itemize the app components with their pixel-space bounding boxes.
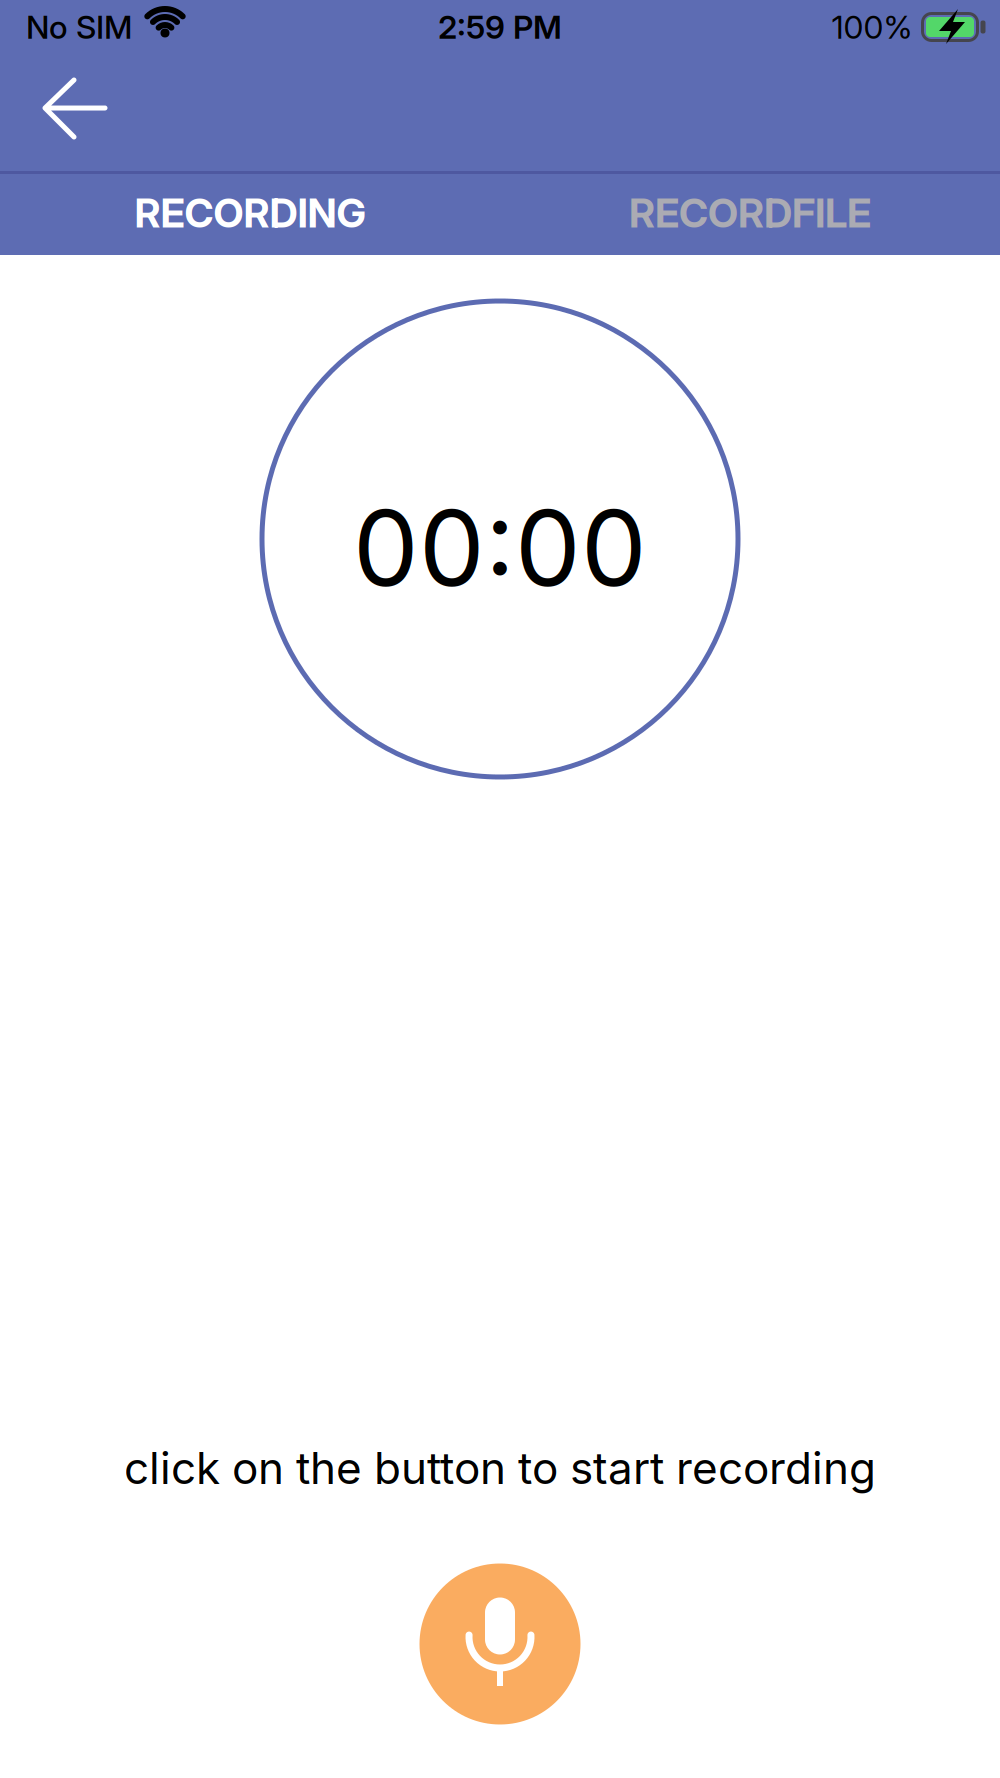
button[interactable] — [20, 54, 130, 164]
staticText: No SIM — [26, 8, 132, 46]
staticText: RECORDING — [134, 189, 365, 237]
staticText: 00:00 — [353, 487, 647, 609]
staticText: RECORDFILE — [629, 189, 871, 237]
button[interactable]: RECORDFILE — [500, 171, 1000, 255]
staticText: 2:59 PM — [438, 8, 562, 46]
staticText: click on the button to start recording — [124, 1442, 876, 1494]
staticText: 100% — [831, 8, 912, 46]
button[interactable] — [419, 1563, 580, 1724]
button[interactable]: RECORDING — [0, 171, 500, 255]
